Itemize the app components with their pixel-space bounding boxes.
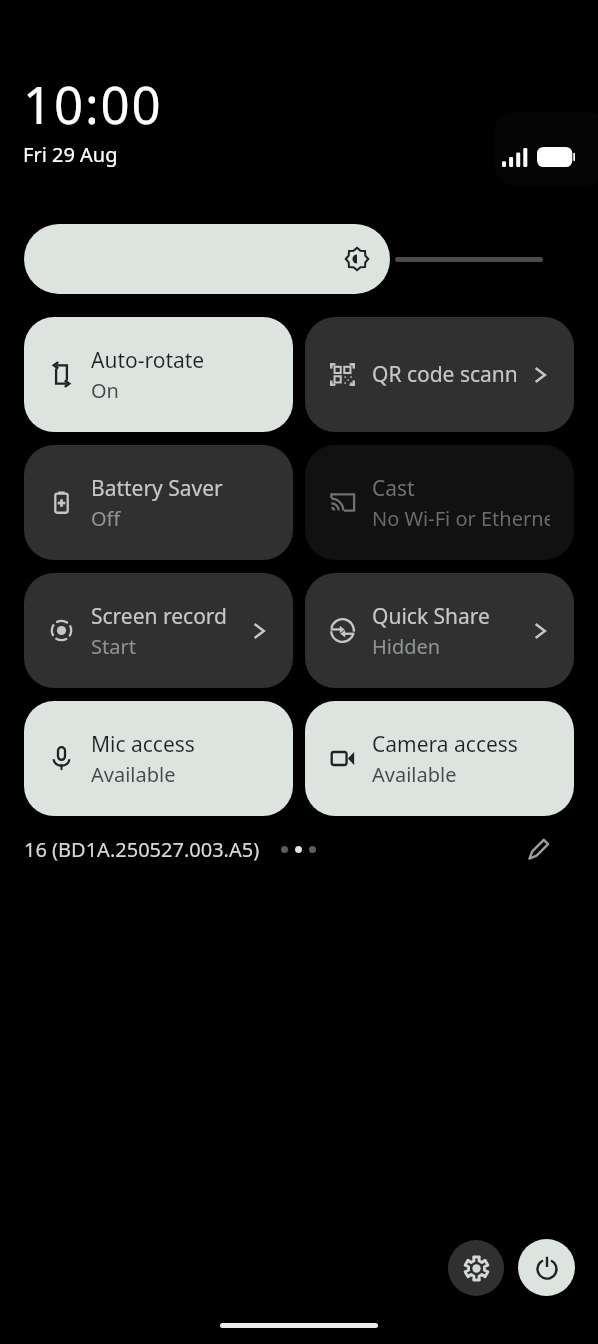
button[interactable]: Cast bbox=[305, 445, 574, 560]
staticText: Battery Saver bbox=[91, 474, 223, 503]
staticText: Off bbox=[91, 505, 121, 532]
staticText: Start bbox=[91, 633, 136, 660]
staticText: Camera access bbox=[372, 730, 518, 759]
button[interactable]: Mic access bbox=[24, 701, 293, 816]
staticText: No Wi-Fi or Ethernet bbox=[372, 505, 550, 532]
button[interactable]: Battery Saver bbox=[24, 445, 293, 560]
staticText: Cast bbox=[372, 474, 415, 503]
staticText: 10:00 bbox=[23, 69, 163, 138]
staticText: QR code scanner bbox=[372, 360, 516, 389]
button[interactable]: Quick Share bbox=[305, 573, 574, 688]
staticText: Fri 29 Aug bbox=[23, 141, 118, 168]
staticText: Screen record bbox=[91, 602, 228, 631]
staticText: Available bbox=[91, 761, 176, 788]
staticText: 16 (BD1A.250527.003.A5) bbox=[24, 836, 260, 863]
staticText: Mic access bbox=[91, 730, 195, 759]
button[interactable]: Power bbox=[518, 1239, 575, 1296]
button[interactable]: Brightness bbox=[24, 224, 574, 294]
button[interactable]: Edit tiles bbox=[522, 832, 556, 866]
staticText: Quick Share bbox=[372, 602, 490, 631]
button[interactable]: Camera access bbox=[305, 701, 574, 816]
staticText: Hidden bbox=[372, 633, 441, 660]
button[interactable]: Auto-rotate bbox=[24, 317, 293, 432]
button[interactable]: Settings bbox=[448, 1240, 504, 1296]
staticText: Auto-rotate bbox=[91, 346, 205, 375]
button[interactable]: QR code scanner bbox=[305, 317, 574, 432]
staticText: On bbox=[91, 377, 119, 404]
staticText: Available bbox=[372, 761, 457, 788]
button[interactable]: Screen record bbox=[24, 573, 293, 688]
